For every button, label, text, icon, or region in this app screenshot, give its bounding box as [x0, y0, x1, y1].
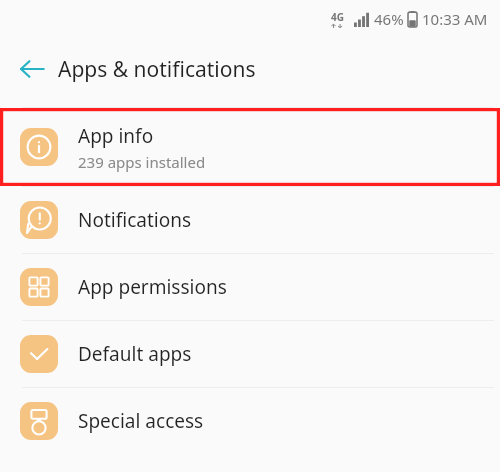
button[interactable]: App info — [0, 108, 500, 186]
button[interactable]: Default apps — [0, 321, 500, 387]
button[interactable]: App permissions — [0, 254, 500, 320]
button[interactable]: Special access — [0, 388, 500, 454]
staticText: App permissions — [78, 274, 227, 300]
staticText: 239 apps installed — [78, 152, 206, 172]
button[interactable]: Notifications — [0, 187, 500, 253]
staticText: 10:33 AM — [422, 9, 488, 29]
staticText: App info — [78, 123, 154, 149]
staticText: 46% — [374, 9, 404, 29]
staticText: Default apps — [78, 341, 192, 367]
staticText: 4G — [331, 10, 344, 24]
staticText: Notifications — [78, 207, 192, 233]
staticText: Special access — [78, 408, 204, 434]
staticText: Apps & notifications — [58, 55, 256, 84]
button[interactable]: Back — [10, 47, 54, 91]
